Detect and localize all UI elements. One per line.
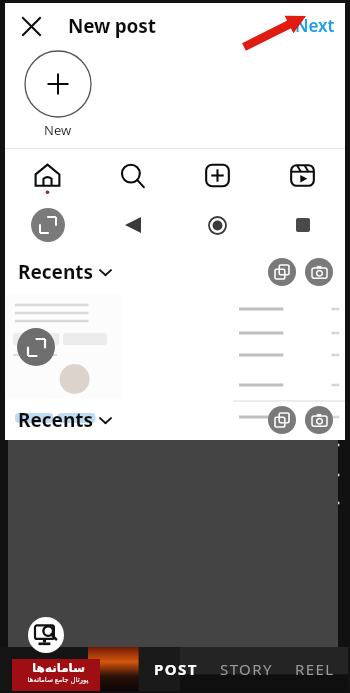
- button[interactable]: Home: [175, 201, 260, 249]
- button[interactable]: Select multiple: [268, 258, 296, 286]
- button[interactable]: Recent apps: [260, 201, 345, 249]
- button[interactable]: Back: [90, 201, 175, 249]
- button[interactable]: Select multiple: [268, 406, 296, 434]
- staticText: پورتال جامع سامانه‌ها: [27, 675, 89, 685]
- button[interactable]: Screenshot: [5, 201, 90, 249]
- button[interactable]: REEL: [291, 653, 339, 685]
- staticText: REEL: [295, 659, 335, 679]
- button[interactable]: STORY: [216, 653, 277, 685]
- staticText: New post: [68, 13, 156, 39]
- button[interactable]: POST: [150, 653, 202, 685]
- button[interactable]: Recents: [18, 259, 111, 285]
- button[interactable]: Camera: [305, 406, 333, 434]
- button[interactable]: [233, 295, 345, 399]
- button[interactable]: Next: [289, 10, 341, 41]
- button[interactable]: Search: [90, 149, 175, 201]
- staticText: POST: [154, 659, 198, 679]
- staticText: Recents: [18, 407, 94, 433]
- button[interactable]: Home: [5, 149, 90, 201]
- button[interactable]: [5, 295, 121, 399]
- button[interactable]: New: [18, 50, 98, 139]
- staticText: Next: [295, 14, 335, 37]
- button[interactable]: Camera: [305, 258, 333, 286]
- staticText: سامانه‌ها: [32, 661, 85, 675]
- staticText: New: [44, 121, 72, 139]
- button[interactable]: Reels: [260, 149, 345, 201]
- button[interactable]: Create: [175, 149, 260, 201]
- button[interactable]: Recents: [18, 407, 111, 433]
- staticText: Recents: [18, 259, 94, 285]
- staticText: STORY: [220, 659, 273, 679]
- button[interactable]: Close: [13, 8, 49, 44]
